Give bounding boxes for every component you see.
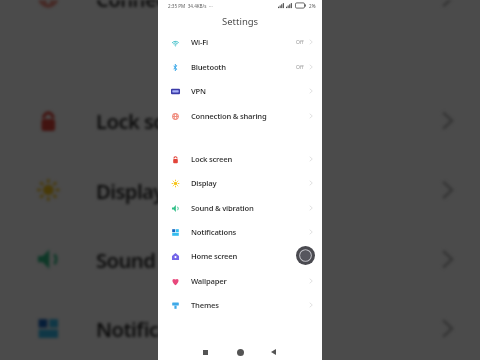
staticText: Display bbox=[191, 178, 217, 188]
button[interactable]: VPN bbox=[158, 79, 322, 103]
staticText: Settings bbox=[222, 15, 259, 28]
button[interactable]: Recent apps bbox=[195, 342, 215, 360]
staticText: Lock screen bbox=[96, 107, 206, 135]
staticText: Notifications bbox=[96, 315, 217, 343]
button[interactable]: Themes bbox=[158, 293, 322, 317]
button[interactable]: Sound & vibration bbox=[158, 196, 322, 220]
staticText: 2% bbox=[309, 3, 316, 9]
staticText: Sound & vibration bbox=[191, 203, 254, 213]
button[interactable]: Lock screen bbox=[158, 147, 322, 171]
button[interactable]: Display bbox=[158, 171, 322, 195]
staticText: Off bbox=[296, 39, 304, 46]
staticText: Themes bbox=[191, 300, 219, 310]
staticText: VPN bbox=[191, 86, 206, 96]
staticText: Lock screen bbox=[191, 154, 233, 164]
staticText: Home screen bbox=[191, 251, 238, 261]
staticText: Notifications bbox=[191, 227, 237, 237]
staticText: 2:35 PM 34.4KB/s bbox=[168, 3, 207, 9]
button[interactable]: Bluetooth bbox=[158, 55, 322, 79]
button[interactable]: Connection & sharing bbox=[158, 104, 322, 128]
button[interactable]: Wi-Fi bbox=[158, 30, 322, 54]
button[interactable]: Back bbox=[263, 342, 283, 360]
staticText: Off bbox=[296, 64, 304, 71]
staticText: Wi-Fi bbox=[191, 37, 208, 47]
button[interactable]: Settings bbox=[158, 0, 322, 30]
button[interactable]: Wallpaper bbox=[158, 269, 322, 293]
button[interactable]: Screen recorder bbox=[296, 246, 315, 265]
staticText: ··· bbox=[209, 3, 213, 9]
staticText: Connection & sharing bbox=[96, 0, 298, 13]
staticText: Display bbox=[96, 177, 164, 205]
button[interactable]: Notifications bbox=[158, 220, 322, 244]
staticText: Sound & vibration bbox=[96, 246, 263, 274]
button[interactable]: Home screen bbox=[158, 244, 322, 268]
button[interactable]: Home bbox=[230, 342, 250, 360]
staticText: Bluetooth bbox=[191, 62, 226, 72]
staticText: Connection & sharing bbox=[191, 111, 267, 121]
staticText: Wallpaper bbox=[191, 276, 227, 286]
